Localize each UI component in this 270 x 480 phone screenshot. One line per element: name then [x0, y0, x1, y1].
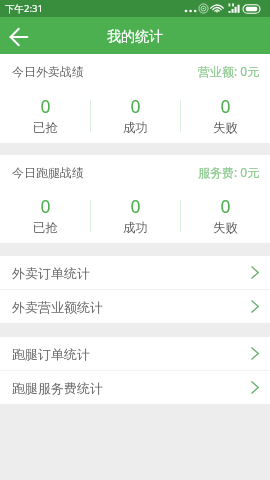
- staticText: 跑腿服务费统计: [12, 380, 103, 396]
- button[interactable]: 跑腿订单统计: [0, 337, 270, 370]
- staticText: 0: [40, 94, 51, 118]
- staticText: 外卖订单统计: [12, 265, 90, 281]
- button[interactable]: 外卖订单统计: [0, 256, 270, 289]
- staticText: 下午2:31: [5, 2, 43, 15]
- staticText: 0: [130, 194, 141, 218]
- staticText: 营业额: 0元: [198, 63, 260, 79]
- button[interactable]: 0: [91, 189, 180, 243]
- staticText: 失败: [213, 220, 238, 236]
- staticText: 0: [40, 194, 51, 218]
- staticText: 今日外卖战绩: [12, 64, 84, 79]
- button[interactable]: 跑腿服务费统计: [0, 371, 270, 404]
- staticText: 已抢: [33, 220, 58, 236]
- staticText: 已抢: [33, 120, 58, 136]
- staticText: 0: [130, 94, 141, 118]
- staticText: 跑腿订单统计: [12, 346, 90, 362]
- button[interactable]: 0: [0, 88, 90, 143]
- staticText: 成功: [123, 220, 148, 236]
- staticText: 今日跑腿战绩: [12, 165, 84, 180]
- staticText: 外卖营业额统计: [12, 299, 103, 315]
- staticText: 0: [220, 94, 231, 118]
- button[interactable]: 0: [0, 189, 90, 243]
- staticText: 失败: [213, 120, 238, 136]
- button[interactable]: Back: [0, 17, 38, 54]
- staticText: 我的统计: [107, 28, 163, 46]
- button[interactable]: 0: [91, 88, 180, 143]
- button[interactable]: 0: [181, 88, 270, 143]
- button[interactable]: 0: [181, 189, 270, 243]
- staticText: 成功: [123, 120, 148, 136]
- staticText: 服务费: 0元: [198, 164, 260, 180]
- button[interactable]: 外卖营业额统计: [0, 290, 270, 323]
- staticText: 0: [220, 194, 231, 218]
